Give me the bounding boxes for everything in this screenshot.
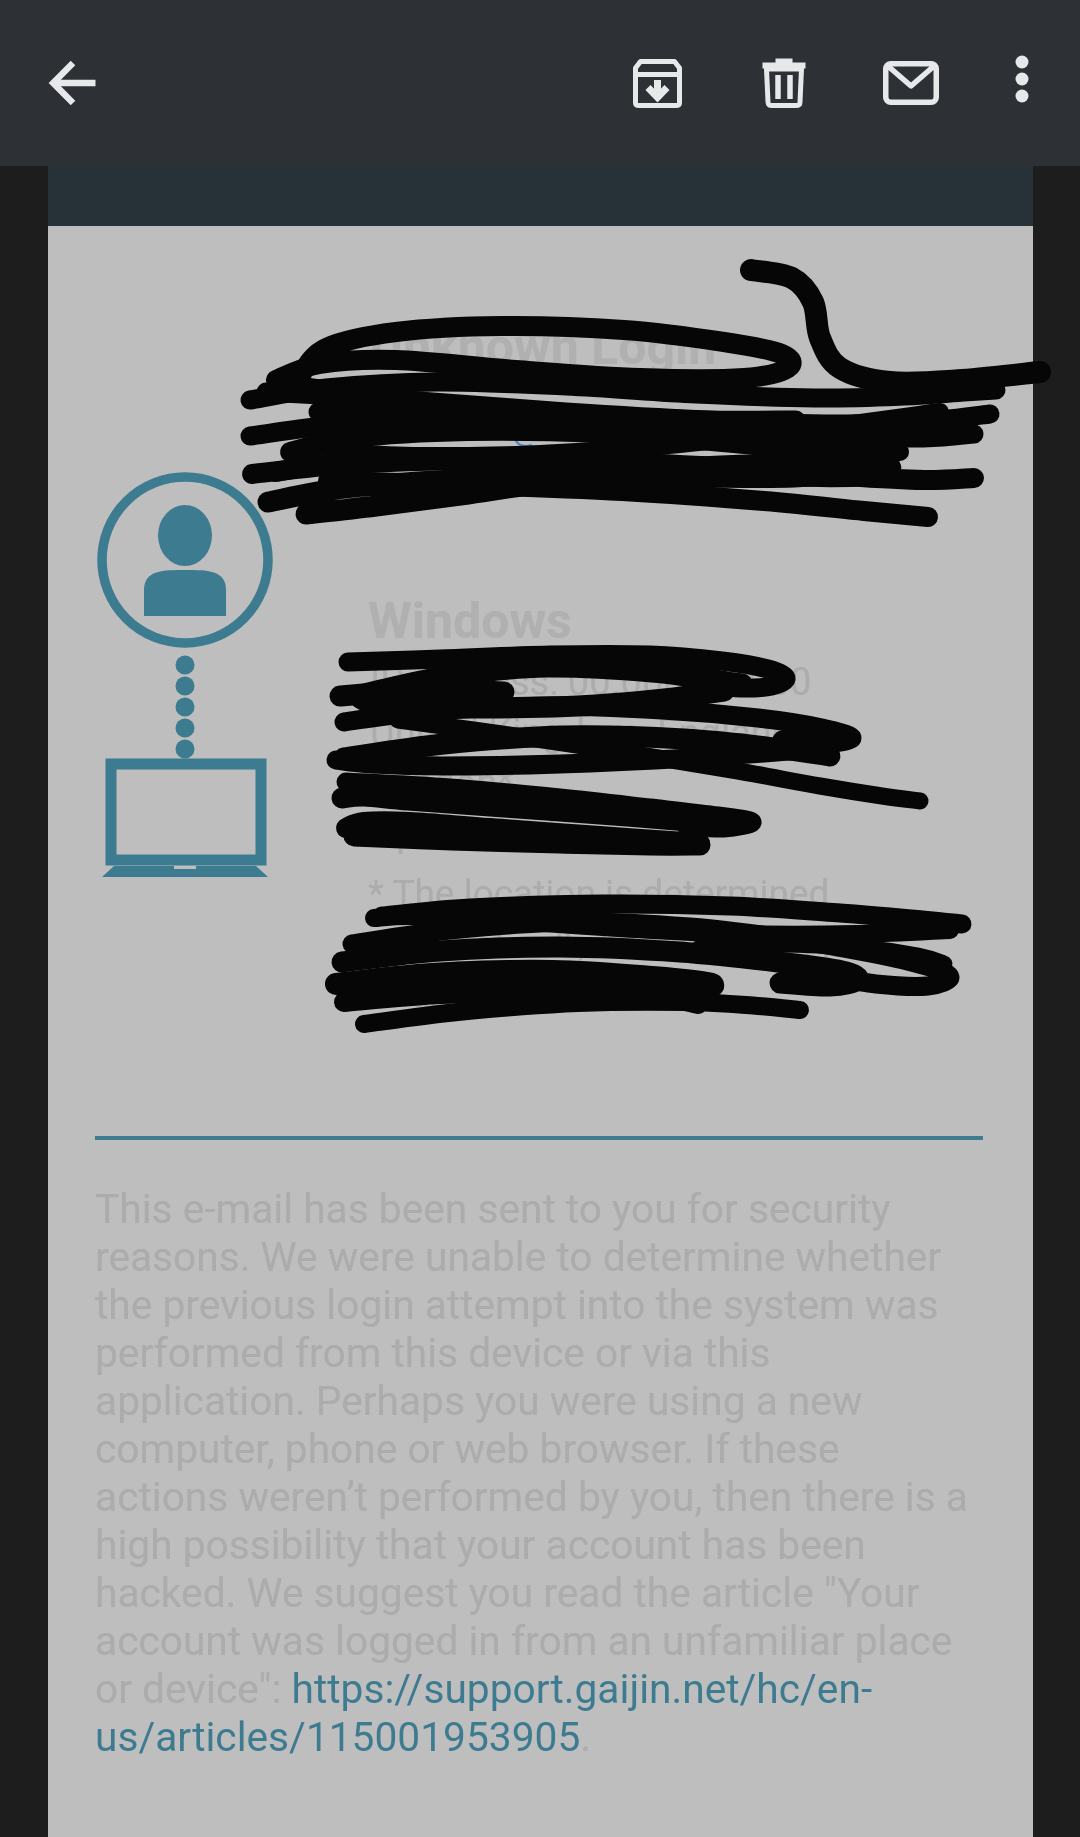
button[interactable]: Back: [37, 47, 109, 119]
staticText: IP address: 00.000.00.000 United Kingdom…: [370, 660, 812, 855]
staticText: Unknown Login: [370, 318, 717, 377]
staticText: This e-mail has been sent to you for sec…: [95, 1185, 971, 1761]
staticText: * The location is determined automatical…: [368, 872, 855, 1016]
staticText: Windows: [368, 592, 572, 651]
button[interactable]: Archive: [621, 47, 693, 119]
button[interactable]: More options: [986, 47, 1058, 119]
button[interactable]: Delete: [748, 47, 820, 119]
button[interactable]: Mark as unread: [875, 47, 947, 119]
staticText: someone@example.com: [370, 408, 747, 448]
